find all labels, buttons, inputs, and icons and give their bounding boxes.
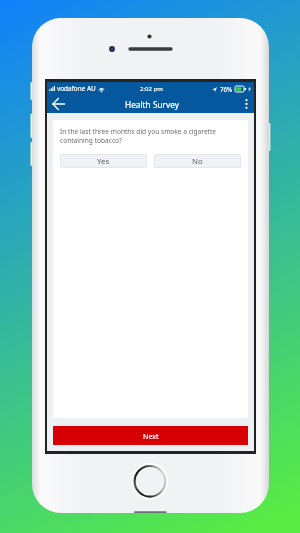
button[interactable]: More options bbox=[239, 95, 254, 113]
staticText: vodafone AU bbox=[57, 84, 96, 93]
button[interactable]: Yes bbox=[60, 154, 147, 168]
staticText: Next bbox=[143, 431, 159, 441]
staticText: 2:02 pm bbox=[140, 85, 163, 93]
button[interactable]: No bbox=[154, 154, 241, 168]
staticText: Health Survey bbox=[125, 99, 179, 110]
staticText: In the last three months did you smoke a… bbox=[60, 127, 241, 145]
staticText: 76% bbox=[220, 85, 233, 93]
button[interactable]: Next bbox=[53, 426, 248, 445]
staticText: Yes bbox=[97, 156, 110, 167]
staticText: No bbox=[192, 156, 203, 167]
button[interactable]: Back bbox=[49, 95, 67, 113]
